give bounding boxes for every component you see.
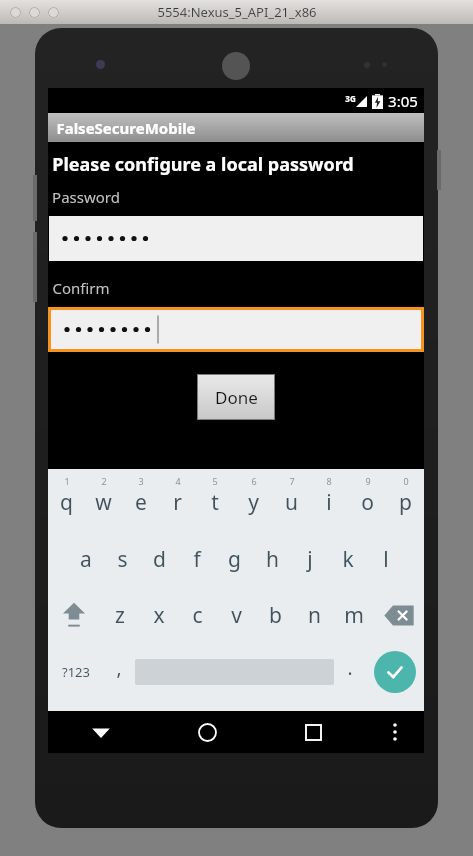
staticText: 9 <box>365 475 371 487</box>
staticText: o <box>361 488 374 517</box>
staticText: 6 <box>251 475 257 487</box>
button[interactable]: Enter <box>366 643 424 701</box>
staticText: 3:05 <box>388 91 418 111</box>
staticText: n <box>308 601 321 630</box>
button[interactable]: 3 <box>122 473 159 531</box>
staticText: m <box>344 601 364 630</box>
staticText: 3 <box>138 475 144 487</box>
staticText: r <box>173 488 182 517</box>
staticText: d <box>153 545 166 574</box>
button[interactable]: v <box>217 587 256 643</box>
button[interactable]: 0 <box>386 473 424 531</box>
staticText: q <box>60 488 73 517</box>
staticText: f <box>193 545 201 574</box>
button[interactable]: b <box>256 587 295 643</box>
button[interactable] <box>10 7 21 18</box>
button[interactable]: 7 <box>272 473 310 531</box>
button[interactable]: Done <box>197 374 275 420</box>
staticText: 5554:Nexus_5_API_21_x86 <box>157 3 317 21</box>
staticText: 0 <box>403 475 409 487</box>
staticText: ?123 <box>62 663 90 681</box>
button[interactable]: 4 <box>159 473 196 531</box>
button[interactable]: 8 <box>310 473 348 531</box>
staticText: b <box>269 601 282 630</box>
button[interactable]: a <box>67 531 104 587</box>
staticText: c <box>192 601 203 630</box>
button[interactable] <box>29 7 40 18</box>
button[interactable]: c <box>178 587 217 643</box>
button[interactable]: h <box>253 531 291 587</box>
staticText: j <box>307 545 313 574</box>
button[interactable]: Back <box>48 711 154 753</box>
staticText: Confirm <box>52 278 110 298</box>
button[interactable]: z <box>100 587 139 643</box>
staticText: i <box>326 488 332 517</box>
button[interactable]: f <box>178 531 215 587</box>
button[interactable]: . <box>334 643 366 701</box>
staticText: Password <box>52 187 120 207</box>
button[interactable] <box>48 7 59 18</box>
button[interactable]: More options <box>366 711 424 753</box>
button[interactable]: s <box>104 531 141 587</box>
staticText: a <box>80 545 92 574</box>
button[interactable]: x <box>139 587 178 643</box>
staticText: v <box>231 601 242 630</box>
staticText: 2 <box>101 475 107 487</box>
staticText: w <box>95 488 112 517</box>
staticText: Done <box>215 386 258 409</box>
staticText: 8 <box>326 475 332 487</box>
staticText: y <box>248 488 259 517</box>
button[interactable] <box>51 310 421 349</box>
staticText: s <box>117 545 128 574</box>
staticText: z <box>115 601 125 630</box>
staticText: 5 <box>212 475 218 487</box>
staticText: h <box>266 545 279 574</box>
staticText: l <box>383 545 389 574</box>
button[interactable]: m <box>334 587 373 643</box>
button[interactable]: Home <box>154 711 260 753</box>
button[interactable]: Space <box>135 643 334 701</box>
button[interactable]: 5 <box>196 473 234 531</box>
button[interactable]: 9 <box>348 473 386 531</box>
staticText: g <box>228 545 241 574</box>
staticText: 1 <box>64 475 70 487</box>
button[interactable]: FalseSecureMobile <box>48 113 424 142</box>
button[interactable]: g <box>215 531 253 587</box>
staticText: 3G <box>345 93 356 104</box>
staticText: 7 <box>289 475 295 487</box>
button[interactable]: 2 <box>85 473 122 531</box>
button[interactable] <box>49 216 423 261</box>
staticText: p <box>399 488 412 517</box>
button[interactable]: 6 <box>234 473 272 531</box>
staticText: 4 <box>175 475 181 487</box>
button[interactable]: Recents <box>260 711 366 753</box>
button[interactable]: 1 <box>48 473 85 531</box>
staticText: u <box>285 488 298 517</box>
staticText: FalseSecureMobile <box>56 118 196 138</box>
button[interactable]: , <box>103 643 135 701</box>
button[interactable]: Backspace <box>373 587 424 643</box>
button[interactable]: ?123 <box>48 643 103 701</box>
staticText: t <box>211 488 219 517</box>
button[interactable]: l <box>367 531 405 587</box>
staticText: , <box>116 655 122 681</box>
button[interactable]: k <box>329 531 367 587</box>
staticText: x <box>153 601 165 630</box>
staticText: Please configure a local password <box>52 152 354 177</box>
button[interactable]: Shift <box>48 587 100 643</box>
button[interactable]: j <box>291 531 329 587</box>
staticText: k <box>342 545 354 574</box>
staticText: e <box>135 488 147 517</box>
button[interactable]: n <box>295 587 334 643</box>
button[interactable]: d <box>141 531 178 587</box>
staticText: . <box>347 655 353 681</box>
